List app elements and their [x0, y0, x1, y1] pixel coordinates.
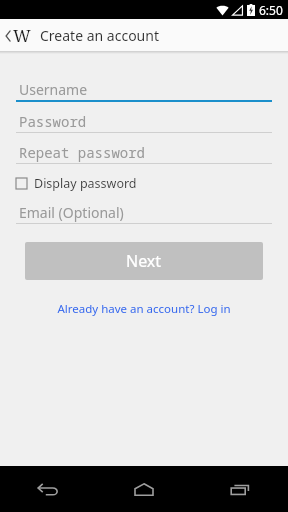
staticText: Create an account — [40, 26, 159, 45]
button[interactable]: Back — [0, 466, 96, 512]
button[interactable]: Display password — [0, 170, 288, 197]
button[interactable]: Recent apps — [192, 466, 288, 512]
staticText: W — [13, 24, 31, 47]
button[interactable]: Repeat password — [16, 141, 272, 164]
button[interactable]: Next — [25, 242, 263, 280]
staticText: Repeat password — [19, 143, 145, 162]
staticText: Username — [19, 80, 88, 99]
button[interactable]: Password — [16, 110, 272, 133]
button[interactable]: Navigate up — [0, 20, 33, 51]
button[interactable]: Home — [96, 466, 192, 512]
staticText: Next — [126, 250, 162, 272]
button[interactable]: Email (Optional) — [16, 201, 272, 224]
staticText: 6:50 — [259, 2, 283, 18]
staticText: Display password — [34, 175, 137, 192]
staticText: Already have an account? Log in — [57, 301, 231, 317]
staticText: Password — [19, 112, 87, 131]
button[interactable]: Already have an account? Log in — [49, 298, 239, 320]
staticText: Email (Optional) — [19, 203, 124, 222]
button[interactable]: Username — [16, 78, 272, 102]
